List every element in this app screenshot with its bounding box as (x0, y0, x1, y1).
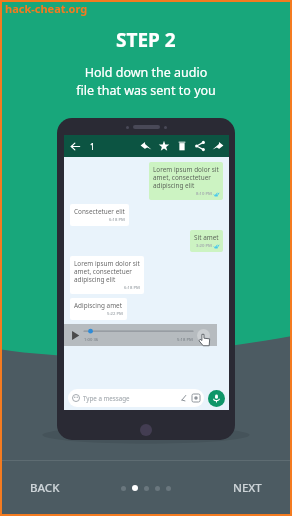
staticText: Type a message (83, 394, 130, 402)
staticText: Lorem ipsum dolor sit amet, consectetuer… (153, 165, 219, 190)
staticText: 1:00 36 (84, 337, 99, 343)
staticText: hack-cheat.org (5, 1, 88, 16)
button[interactable]: Back (69, 140, 82, 153)
button[interactable]: 1:00 36 (64, 324, 217, 346)
button[interactable]: Lorem ipsum dolor sit amet, consectetuer… (149, 162, 223, 200)
staticText: STEP 2 (116, 27, 176, 53)
staticText: 8:10 PM (196, 191, 212, 197)
button[interactable]: Adipiscing amet (70, 298, 127, 320)
staticText: Lorem ipsum dolor sit amet, consectetuer… (74, 259, 140, 284)
staticText: Hold down the audio file that was sent t… (0, 64, 292, 98)
button[interactable]: Consectetuer elit (70, 204, 129, 226)
staticText: 3:20 PM (196, 243, 212, 249)
button[interactable]: Type a message (68, 389, 204, 407)
staticText: Sit amet (194, 233, 219, 242)
staticText: 1 (90, 141, 95, 152)
button[interactable]: Sit amet (190, 230, 223, 252)
button[interactable]: Forward (212, 140, 224, 152)
staticText: 5:18 PM (177, 337, 193, 343)
button[interactable]: Star (158, 140, 170, 152)
button[interactable]: Camera (192, 394, 200, 402)
button[interactable]: Attach (180, 394, 188, 402)
staticText: 6:18 PM (109, 217, 125, 223)
button[interactable]: Share (194, 140, 206, 152)
button[interactable]: Lorem ipsum dolor sit amet, consectetuer… (70, 256, 144, 294)
staticText: Consectetuer elit (74, 207, 125, 216)
button[interactable]: Reply (140, 140, 152, 152)
button[interactable]: Record voice message (208, 390, 225, 407)
staticText: Adipiscing amet (74, 301, 123, 310)
button[interactable]: BACK (24, 474, 66, 502)
button[interactable]: NEXT (227, 474, 268, 502)
button[interactable]: Delete (176, 140, 188, 152)
staticText: 6:18 PM (124, 285, 140, 291)
staticText: 5:22 PM (107, 311, 123, 317)
staticText: BACK (30, 480, 60, 496)
staticText: NEXT (233, 480, 262, 496)
